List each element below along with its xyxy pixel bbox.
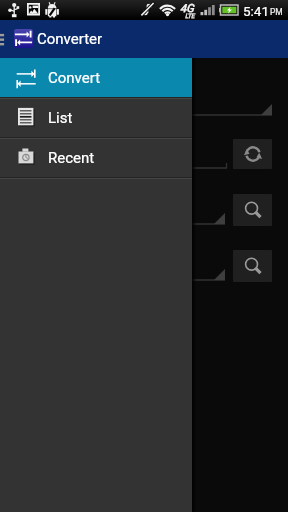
button[interactable]: Swap units (233, 139, 272, 169)
staticText: Converter (37, 30, 103, 48)
button[interactable]: Search (233, 194, 272, 226)
button[interactable]: List (0, 99, 192, 137)
button[interactable]: Recent (0, 139, 192, 177)
staticText: Recent (48, 149, 95, 167)
staticText: PM (270, 7, 283, 17)
button[interactable]: Convert (0, 58, 192, 97)
staticText: 4G (180, 2, 194, 15)
button[interactable]: Open navigation drawer (0, 20, 4, 58)
button[interactable]: Search (233, 250, 272, 282)
staticText: Convert (48, 69, 101, 87)
staticText: LTE (185, 12, 195, 19)
staticText: List (48, 109, 73, 127)
staticText: 5:41 (243, 3, 270, 19)
